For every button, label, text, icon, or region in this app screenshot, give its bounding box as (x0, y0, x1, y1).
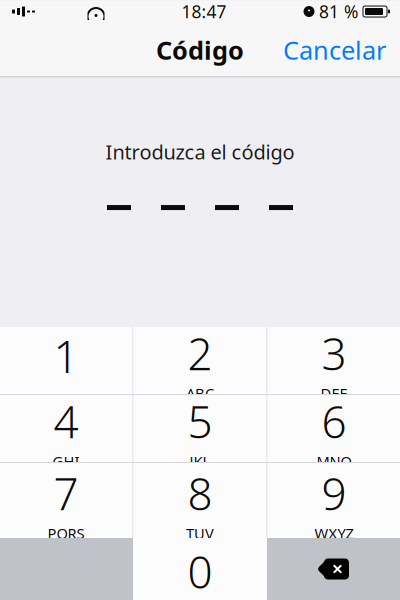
button[interactable]: Delete (267, 538, 400, 600)
staticText: PQRS (47, 523, 84, 543)
staticText: TUV (186, 523, 214, 543)
staticText: 3 (321, 324, 346, 382)
staticText: 5 (187, 392, 212, 450)
staticText: 4 (53, 392, 78, 450)
staticText: 18:47 (181, 0, 226, 23)
button[interactable]: 4 (0, 395, 132, 462)
button[interactable]: 1 (0, 327, 132, 394)
button[interactable]: 2 (133, 327, 266, 394)
staticText: WXYZ (314, 523, 353, 543)
staticText: 7 (53, 464, 78, 522)
staticText: Introduzca el código (105, 138, 294, 165)
button[interactable]: 8 (133, 463, 266, 538)
button[interactable]: 6 (267, 395, 400, 462)
staticText: MNO (316, 451, 351, 471)
staticText: DEF (320, 383, 347, 403)
button[interactable]: 5 (133, 395, 266, 462)
staticText: JKL (189, 451, 210, 471)
button[interactable]: 9 (267, 463, 400, 538)
staticText: 6 (321, 392, 346, 450)
staticText: GHI (52, 451, 79, 471)
staticText: ABC (186, 383, 214, 403)
staticText: 8 (187, 464, 212, 522)
staticText: 1 (53, 327, 78, 385)
button[interactable]: Cancelar (273, 25, 396, 75)
button[interactable]: 7 (0, 463, 132, 538)
button[interactable]: 0 (133, 538, 267, 600)
staticText: 9 (321, 464, 346, 522)
staticText: 0 (187, 542, 212, 600)
staticText: Código (156, 33, 244, 67)
button[interactable]: 3 (267, 327, 400, 394)
staticText: 81 % (319, 0, 358, 23)
staticText: 2 (187, 324, 212, 382)
staticText: Cancelar (283, 33, 386, 67)
